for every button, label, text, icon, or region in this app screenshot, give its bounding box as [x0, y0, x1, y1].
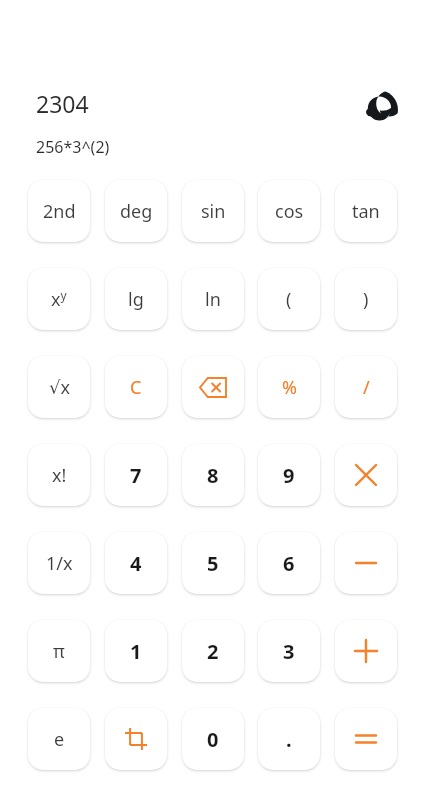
staticText: 7 [130, 462, 142, 489]
staticText: deg [120, 199, 153, 224]
button[interactable]: ) [335, 268, 397, 330]
button[interactable]: 5 [182, 532, 244, 594]
button[interactable]: Crop [105, 708, 167, 770]
button[interactable]: / [335, 356, 397, 418]
button[interactable]: Multiply [335, 444, 397, 506]
button[interactable]: ln [182, 268, 244, 330]
staticText: 0 [207, 726, 219, 753]
button[interactable]: 2 [182, 620, 244, 682]
staticText: 2 [207, 638, 219, 665]
staticText: lg [128, 287, 144, 312]
button[interactable]: ( [258, 268, 320, 330]
button[interactable]: C [105, 356, 167, 418]
staticText: √x [49, 375, 70, 400]
button[interactable]: lg [105, 268, 167, 330]
staticText: 6 [283, 550, 295, 577]
button[interactable]: 7 [105, 444, 167, 506]
button[interactable]: 0 [182, 708, 244, 770]
button[interactable]: cos [258, 180, 320, 242]
staticText: % [282, 375, 297, 400]
button[interactable]: sin [182, 180, 244, 242]
button[interactable]: . [258, 708, 320, 770]
button[interactable]: 4 [105, 532, 167, 594]
staticText: π [53, 639, 65, 664]
staticText: ln [205, 287, 221, 312]
button[interactable]: 1/x [28, 532, 90, 594]
staticText: C [130, 375, 142, 400]
button[interactable]: 9 [258, 444, 320, 506]
staticText: 256*3^(2) [36, 136, 110, 158]
button[interactable]: 8 [182, 444, 244, 506]
button[interactable]: xy [28, 268, 90, 330]
staticText: ) [363, 287, 369, 312]
button[interactable]: tan [335, 180, 397, 242]
staticText: / [363, 375, 370, 400]
staticText: . [286, 726, 292, 753]
staticText: 2304 [36, 88, 89, 119]
staticText: xy [51, 287, 67, 312]
staticText: ( [286, 287, 292, 312]
staticText: 9 [283, 462, 295, 489]
button[interactable]: 2nd [28, 180, 90, 242]
staticText: 4 [130, 550, 142, 577]
button[interactable]: π [28, 620, 90, 682]
staticText: e [54, 727, 65, 752]
staticText: cos [275, 199, 304, 224]
button[interactable]: % [258, 356, 320, 418]
staticText: sin [201, 199, 226, 224]
button[interactable]: Plus [335, 620, 397, 682]
button[interactable]: Backspace [182, 356, 244, 418]
button[interactable]: Minus [335, 532, 397, 594]
staticText: tan [352, 199, 380, 224]
staticText: 3 [283, 638, 295, 665]
staticText: 2nd [43, 199, 76, 224]
staticText: x! [52, 463, 67, 488]
button[interactable]: x! [28, 444, 90, 506]
button[interactable]: deg [105, 180, 167, 242]
button[interactable]: 6 [258, 532, 320, 594]
staticText: 5 [207, 550, 219, 577]
button[interactable]: 3 [258, 620, 320, 682]
staticText: 1 [130, 638, 142, 665]
button[interactable]: 1 [105, 620, 167, 682]
button[interactable]: e [28, 708, 90, 770]
staticText: 8 [207, 462, 219, 489]
button[interactable]: Equals [335, 708, 397, 770]
button[interactable]: Toggle dark mode [358, 90, 398, 130]
staticText: 1/x [46, 551, 73, 576]
button[interactable]: √x [28, 356, 90, 418]
